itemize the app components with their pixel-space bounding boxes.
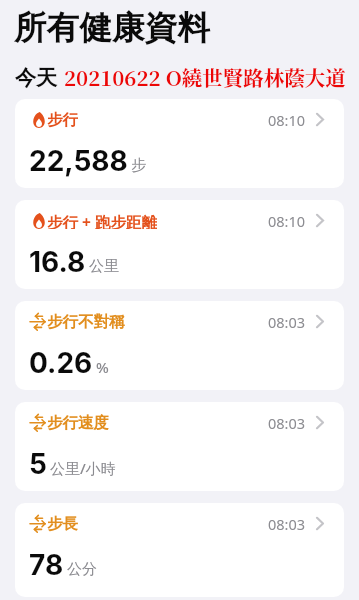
button[interactable]: 步行 xyxy=(15,99,344,188)
staticText: 0.26 xyxy=(29,346,93,380)
staticText: 步行 + 跑步距離 xyxy=(47,211,157,229)
staticText: 08:10 xyxy=(268,211,306,229)
button[interactable]: 步行速度 xyxy=(15,402,344,491)
staticText: 5 xyxy=(29,447,47,481)
staticText: 步長 xyxy=(47,514,78,532)
staticText: 今天 xyxy=(15,65,57,91)
staticText: 公里/小時 xyxy=(50,458,116,478)
staticText: 16.8 xyxy=(29,245,86,279)
button[interactable]: 步長 xyxy=(15,503,344,597)
staticText: 08:10 xyxy=(268,110,306,128)
staticText: 步 xyxy=(131,156,146,175)
staticText: 78 xyxy=(29,548,64,582)
staticText: 公分 xyxy=(67,560,97,579)
staticText: 所有健康資料 xyxy=(14,8,211,49)
staticText: 公里 xyxy=(89,257,119,276)
staticText: 步行不對稱 xyxy=(47,312,125,330)
staticText: % xyxy=(96,357,109,377)
staticText: 08:03 xyxy=(268,413,306,431)
staticText: 08:03 xyxy=(268,514,306,532)
staticText: 20210622 O繞世賢路林蔭大道 xyxy=(64,62,346,91)
staticText: 步行速度 xyxy=(47,413,109,431)
button[interactable]: 步行不對稱 xyxy=(15,301,344,390)
staticText: 08:03 xyxy=(268,312,306,330)
staticText: 22,588 xyxy=(29,144,128,178)
button[interactable]: 步行 + 跑步距離 xyxy=(15,200,344,289)
staticText: 步行 xyxy=(47,110,78,128)
